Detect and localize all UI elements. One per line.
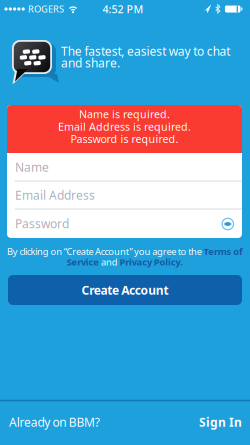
staticText: Name bbox=[15, 159, 49, 175]
button[interactable]: Email Address bbox=[15, 182, 242, 208]
button[interactable]: Sign In bbox=[199, 408, 242, 436]
button[interactable]: Terms of Service bbox=[67, 256, 99, 268]
staticText: Password bbox=[15, 215, 69, 231]
staticText: Service bbox=[67, 256, 99, 268]
button[interactable]: Terms of Service bbox=[203, 245, 243, 258]
button[interactable]: Create Account bbox=[8, 275, 242, 305]
staticText: The fastest, easiest way to chat bbox=[61, 43, 230, 59]
staticText: Create Account bbox=[81, 282, 168, 298]
staticText: Sign In bbox=[199, 414, 242, 430]
staticText: Already on BBM? bbox=[9, 414, 100, 430]
staticText: Email Address is required. bbox=[58, 119, 191, 134]
staticText: and share. bbox=[61, 55, 120, 71]
staticText: Privacy Policy. bbox=[119, 256, 183, 268]
button[interactable]: Show Password bbox=[220, 216, 236, 232]
staticText: Email Address bbox=[15, 187, 95, 203]
button[interactable]: Privacy Policy bbox=[119, 256, 183, 268]
staticText: Password is required. bbox=[70, 132, 178, 146]
button[interactable]: Password bbox=[15, 210, 242, 236]
staticText: 4:52 PM bbox=[102, 2, 143, 16]
staticText: Terms of bbox=[203, 245, 243, 258]
staticText: ROGERS bbox=[28, 3, 64, 15]
staticText: Name is required. bbox=[79, 107, 170, 121]
button[interactable]: Name bbox=[15, 154, 242, 180]
staticText: and bbox=[99, 256, 119, 268]
staticText: By clicking on “Create Account” you agre… bbox=[7, 245, 203, 258]
